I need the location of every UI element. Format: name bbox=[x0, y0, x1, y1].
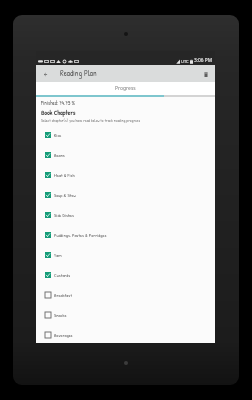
staticText: UTC bbox=[181, 59, 189, 64]
staticText: Beans bbox=[54, 152, 65, 159]
button[interactable]: Custards bbox=[36, 265, 215, 285]
staticText: Meat & Fish bbox=[54, 172, 75, 179]
button[interactable]: Side Dishes bbox=[36, 205, 215, 225]
staticText: Snacks bbox=[54, 312, 67, 319]
button[interactable]: Rice bbox=[36, 125, 215, 145]
button[interactable]: Puddings, Pastes & Porridges bbox=[36, 225, 215, 245]
staticText: Finished: 74.75 % bbox=[41, 99, 76, 106]
staticText: Side Dishes bbox=[54, 212, 74, 219]
staticText: 3:06 PM bbox=[194, 57, 213, 64]
button[interactable]: Meat & Fish bbox=[36, 165, 215, 185]
button[interactable]: Progress bbox=[113, 83, 138, 94]
staticText: Select chapter(s) you have read below to… bbox=[41, 118, 141, 124]
staticText: Soup & Stew bbox=[54, 192, 76, 199]
staticText: Progress bbox=[115, 85, 136, 92]
button[interactable]: Breakfast bbox=[36, 285, 215, 305]
button[interactable]: Beverages bbox=[36, 325, 215, 345]
button[interactable]: Beans bbox=[36, 145, 215, 165]
staticText: Book Chapters bbox=[41, 108, 76, 117]
staticText: Breakfast bbox=[54, 292, 72, 299]
staticText: Reading Plan bbox=[60, 68, 97, 79]
button[interactable]: Snacks bbox=[36, 305, 215, 325]
button[interactable]: Back bbox=[38, 67, 52, 81]
staticText: Beverages bbox=[54, 332, 73, 339]
button[interactable]: Yam bbox=[36, 245, 215, 265]
staticText: Puddings, Pastes & Porridges bbox=[54, 232, 107, 239]
staticText: Rice bbox=[54, 132, 62, 139]
staticText: Custards bbox=[54, 272, 71, 279]
staticText: Yam bbox=[54, 252, 62, 259]
button[interactable]: Soup & Stew bbox=[36, 185, 215, 205]
button[interactable]: Delete bbox=[200, 68, 212, 80]
